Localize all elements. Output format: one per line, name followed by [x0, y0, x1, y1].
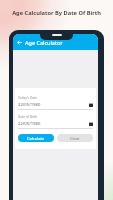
- button[interactable]: Date of Birth: [18, 115, 93, 129]
- staticText: Date of Birth: [18, 115, 38, 119]
- staticText: 22/05/1980: [18, 102, 41, 108]
- staticText: Age Calculator By Date Of Birth: [0, 9, 113, 17]
- button[interactable]: Clear: [57, 134, 93, 142]
- button[interactable]: Calculate: [18, 134, 54, 142]
- staticText: Age Calculator: [25, 39, 63, 46]
- button[interactable]: Today's Date: [18, 96, 93, 110]
- button[interactable]: Back: [15, 38, 24, 47]
- staticText: 22/05/1980: [18, 121, 41, 127]
- staticText: Calculate: [27, 136, 45, 141]
- staticText: Clear: [70, 136, 80, 141]
- staticText: Today's Date: [18, 96, 38, 100]
